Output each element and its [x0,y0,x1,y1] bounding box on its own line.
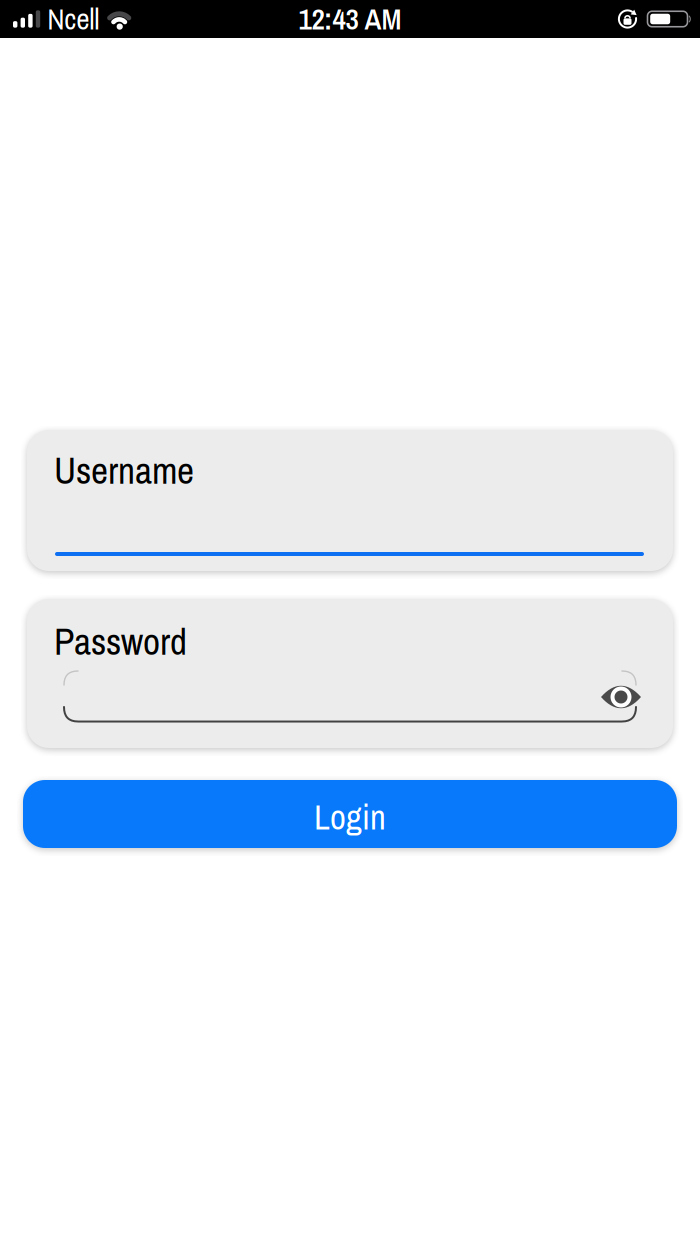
button[interactable]: Password [27,599,673,748]
button[interactable]: Show password [601,684,641,710]
button[interactable]: Login [23,780,677,848]
staticText: Password [54,616,187,666]
staticText: Ncell [47,0,99,39]
staticText: Username [54,445,194,495]
staticText: 12:43 AM [298,0,401,39]
staticText: Login [314,794,386,840]
button[interactable]: Username [27,430,673,571]
